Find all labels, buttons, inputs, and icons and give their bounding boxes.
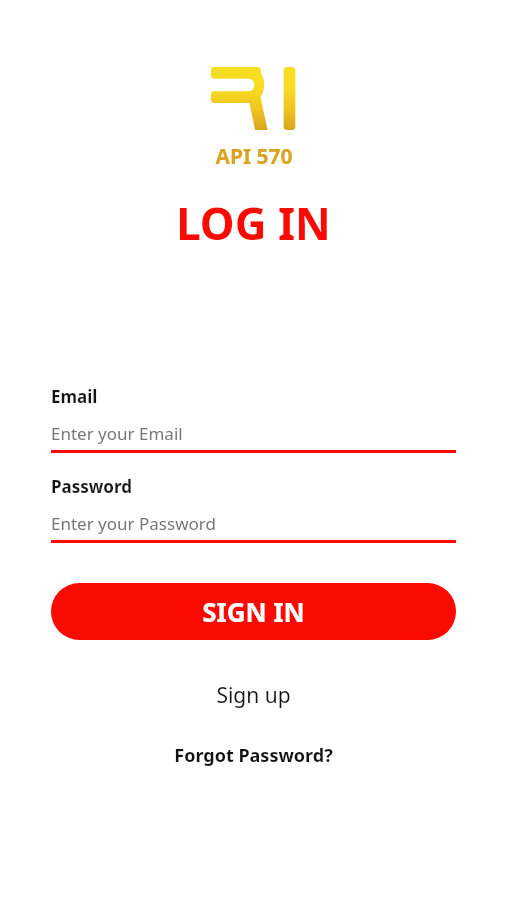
button[interactable]: Forgot Password? [164,739,343,772]
staticText: LOG IN [176,193,331,253]
staticText: Password [51,475,132,498]
staticText: Enter your Password [51,512,216,535]
staticText: Forgot Password? [174,743,333,768]
staticText: API 570 [215,142,293,171]
staticText: Email [51,385,98,408]
staticText: Sign up [216,681,291,710]
button[interactable]: Sign up [206,677,301,714]
staticText: Enter your Email [51,422,183,445]
button[interactable]: Enter your Email [51,422,456,453]
button[interactable]: SIGN IN [51,583,456,640]
button[interactable]: Enter your Password [51,512,456,543]
staticText: SIGN IN [202,594,305,629]
